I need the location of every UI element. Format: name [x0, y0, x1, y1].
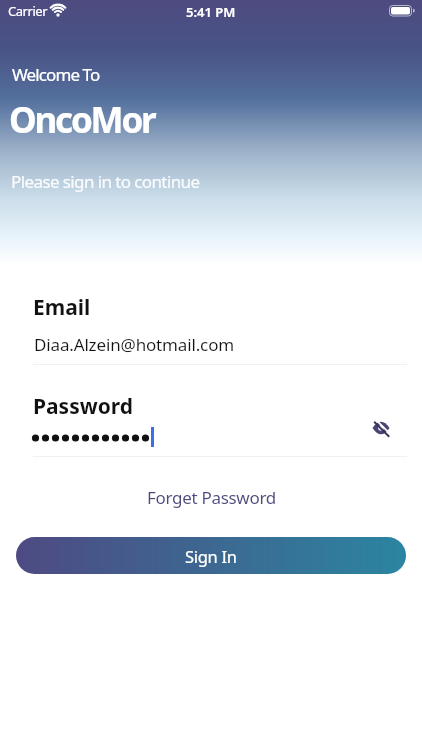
staticText: OncoMor — [9, 96, 155, 144]
button[interactable] — [372, 421, 390, 438]
button[interactable]: Sign In — [16, 537, 406, 574]
button[interactable]: Email — [0, 288, 422, 366]
staticText: Please sign in to continue — [11, 170, 200, 193]
button[interactable]: Password — [0, 385, 422, 457]
staticText: Sign In — [185, 545, 237, 567]
button[interactable]: Forget Password — [147, 486, 276, 509]
staticText: Carrier — [8, 2, 48, 20]
staticText: Diaa.Alzein@hotmail.com — [34, 333, 235, 356]
staticText: Forget Password — [147, 486, 276, 509]
staticText: 5:41 PM — [186, 3, 236, 21]
staticText: Email — [33, 293, 91, 322]
staticText: Welcome To — [12, 63, 100, 86]
staticText: Password — [33, 392, 134, 421]
